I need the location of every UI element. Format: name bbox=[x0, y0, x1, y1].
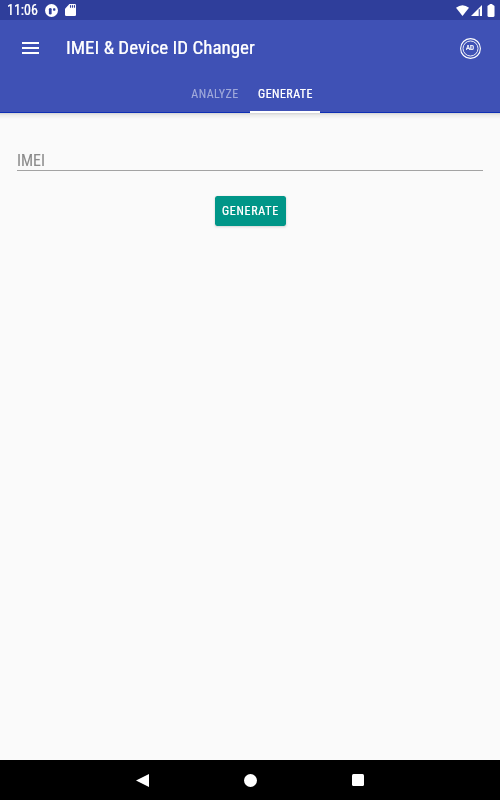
staticText: AD bbox=[466, 44, 475, 52]
staticText: IMEI & Device ID Changer bbox=[66, 36, 255, 58]
staticText: ANALYZE bbox=[191, 87, 239, 101]
button[interactable]: Recent apps bbox=[304, 760, 412, 800]
staticText: IMEI bbox=[17, 151, 46, 167]
button[interactable]: ANALYZE bbox=[180, 76, 250, 112]
staticText: 11:06 bbox=[7, 2, 38, 18]
staticText: GENERATE bbox=[222, 204, 279, 218]
button[interactable]: Home bbox=[196, 760, 304, 800]
button[interactable]: Back bbox=[88, 760, 196, 800]
staticText: GENERATE bbox=[258, 87, 313, 101]
button[interactable]: GENERATE bbox=[250, 76, 320, 112]
button[interactable]: GENERATE bbox=[215, 196, 286, 226]
button[interactable]: Open navigation menu bbox=[7, 25, 53, 71]
button[interactable]: Remove ads bbox=[448, 26, 492, 70]
